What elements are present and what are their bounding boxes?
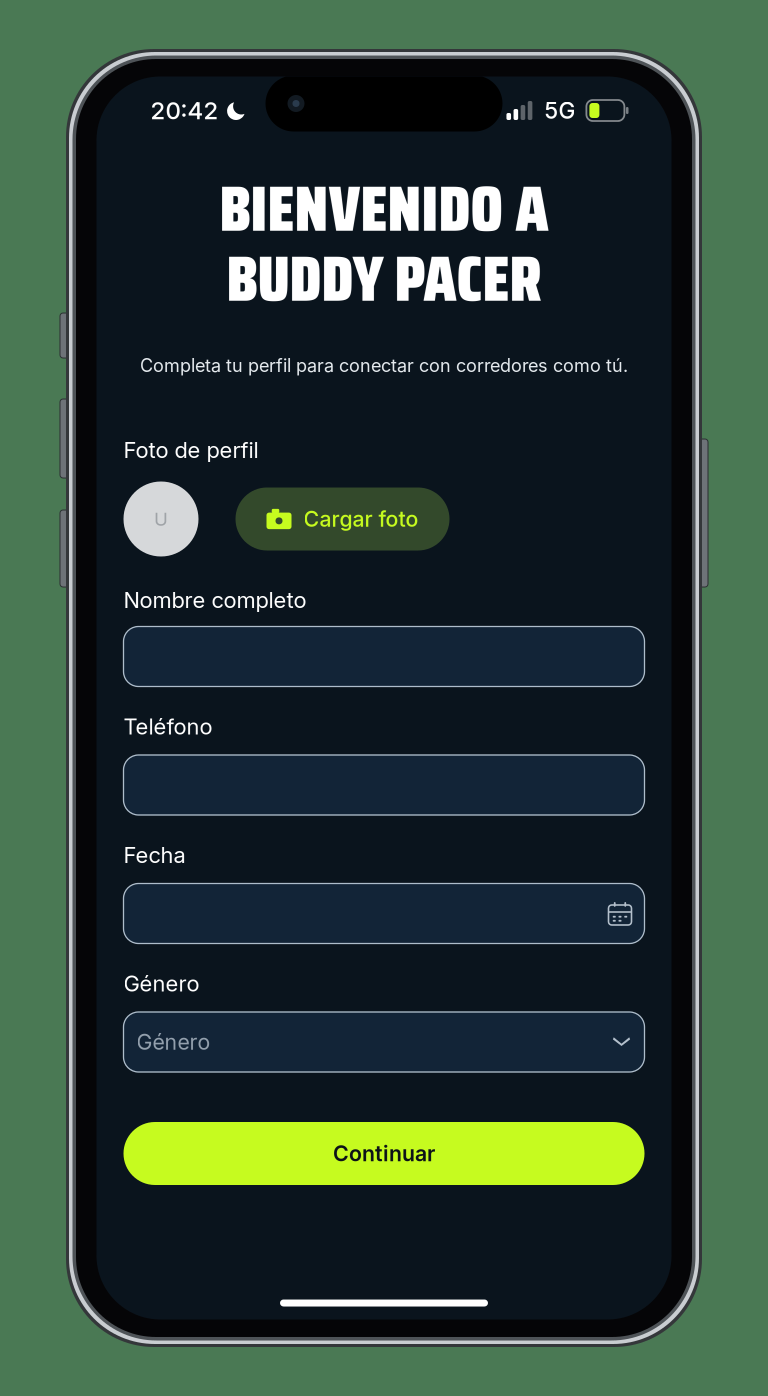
staticText: BIENVENIDO A [219,158,548,259]
staticText: BUDDY PACER [226,228,541,329]
staticText: Continuar [333,1141,435,1166]
button[interactable]: Continuar [123,1122,644,1185]
staticText: Foto de perfil [123,437,258,463]
staticText: 20:42 [150,96,218,125]
staticText: Género [136,1029,210,1055]
staticText: Completa tu perfil para conectar con cor… [140,355,628,376]
staticText: U [154,508,168,530]
staticText: Cargar foto [303,506,418,532]
staticText: 5G [544,97,575,124]
staticText: Teléfono [123,713,212,740]
staticText: Fecha [123,842,185,868]
button[interactable]: Cargar foto [235,487,449,550]
staticText: Género [123,970,199,997]
staticText: Nombre completo [123,587,306,613]
